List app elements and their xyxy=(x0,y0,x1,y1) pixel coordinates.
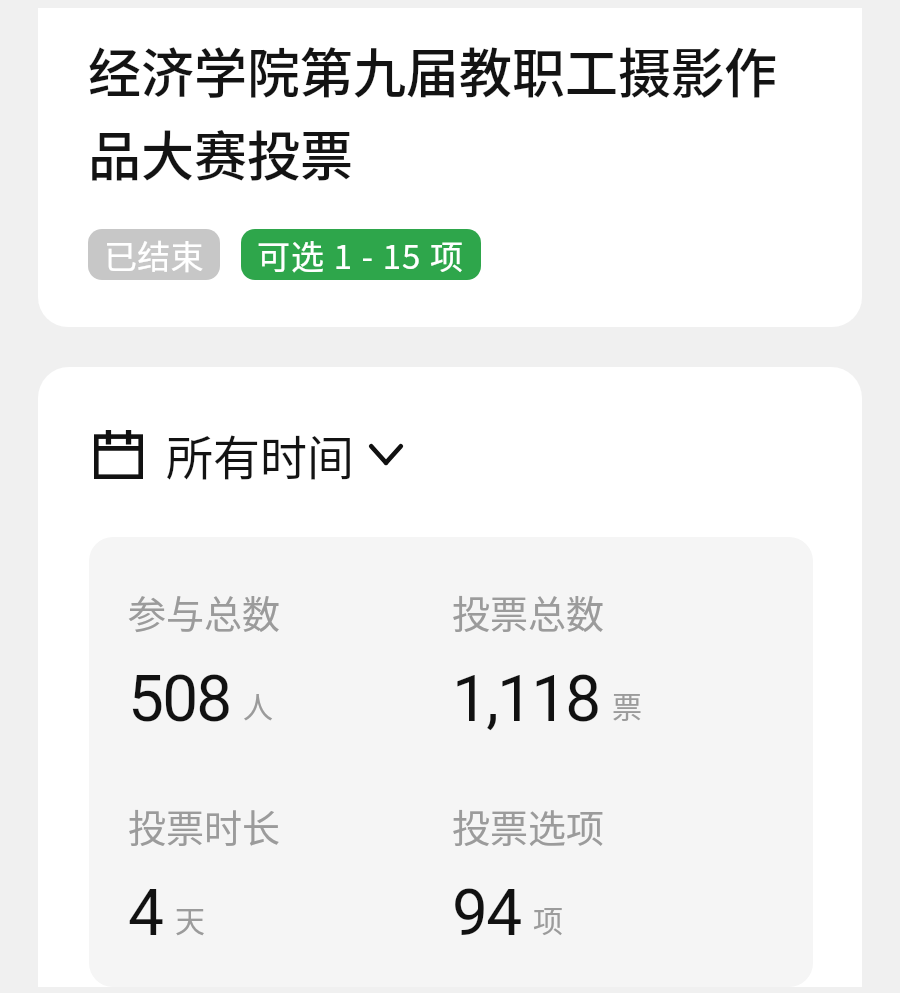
staticText: 参与总数 xyxy=(128,584,281,639)
staticText: 投票选项 xyxy=(452,798,605,853)
button[interactable]: 经济学院第九届教职工摄影作品大赛投票 xyxy=(38,8,862,327)
staticText: 投票总数 xyxy=(452,584,605,639)
staticText: 经济学院第九届教职工摄影作品大赛投票 xyxy=(88,32,799,192)
button[interactable]: 已结束 xyxy=(88,229,220,280)
other: Expand time filter xyxy=(369,444,403,465)
staticText: 投票时长 xyxy=(128,798,281,853)
staticText: 票 xyxy=(612,683,642,726)
button[interactable]: 可选 1 - 15 项 xyxy=(241,229,481,280)
staticText: 可选 1 - 15 项 xyxy=(257,231,465,279)
staticText: 人 xyxy=(243,683,273,726)
staticText: 天 xyxy=(175,897,205,940)
staticText: 已结束 xyxy=(104,231,204,279)
other: Date range filter xyxy=(94,430,143,479)
staticText: 1,118 xyxy=(452,662,600,737)
staticText: 4 xyxy=(128,876,163,951)
staticText: 508 xyxy=(128,662,231,737)
staticText: 94 xyxy=(452,876,521,951)
staticText: 所有时间 xyxy=(166,420,354,488)
staticText: 项 xyxy=(533,897,563,940)
button[interactable]: Date range filter xyxy=(94,420,403,488)
